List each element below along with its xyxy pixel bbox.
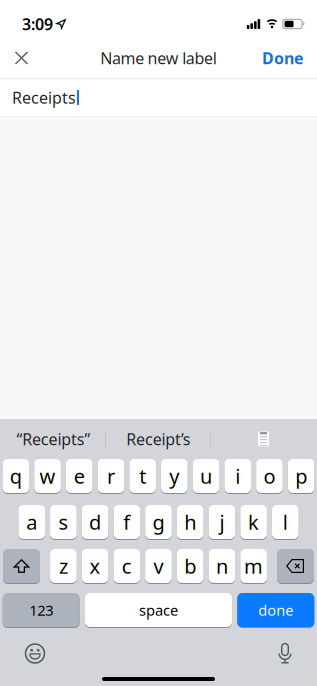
staticText: u xyxy=(200,463,212,489)
button[interactable] xyxy=(278,643,292,664)
button[interactable]: k xyxy=(240,505,267,539)
staticText: w xyxy=(40,463,56,489)
button[interactable]: q xyxy=(3,459,29,493)
button[interactable] xyxy=(25,643,45,663)
button[interactable]: m xyxy=(240,549,267,583)
button[interactable]: t xyxy=(129,459,156,493)
button[interactable]: u xyxy=(193,459,219,493)
staticText: x xyxy=(90,553,101,579)
staticText: i xyxy=(235,463,240,489)
staticText: b xyxy=(184,553,196,579)
button[interactable]: c xyxy=(113,549,140,583)
button[interactable]: b xyxy=(177,549,203,583)
button[interactable]: Receipt’s xyxy=(106,419,211,459)
staticText: 123 xyxy=(29,600,53,620)
staticText: o xyxy=(263,463,275,489)
staticText: h xyxy=(184,509,196,535)
button[interactable]: y xyxy=(161,459,188,493)
button[interactable]: a xyxy=(18,505,45,539)
button[interactable]: i xyxy=(224,459,251,493)
staticText: r xyxy=(107,463,115,489)
button[interactable]: r xyxy=(98,459,124,493)
staticText: z xyxy=(59,553,68,579)
button[interactable]: h xyxy=(177,505,203,539)
button[interactable]: done xyxy=(237,593,314,627)
staticText: l xyxy=(283,509,288,535)
staticText: s xyxy=(58,509,68,535)
staticText: j xyxy=(219,509,224,535)
button[interactable]: d xyxy=(82,505,108,539)
button[interactable] xyxy=(0,39,28,76)
button[interactable]: n xyxy=(209,549,235,583)
staticText: v xyxy=(153,553,163,579)
staticText: c xyxy=(122,553,132,579)
staticText: q xyxy=(10,463,22,489)
staticText: e xyxy=(74,463,85,489)
staticText: f xyxy=(123,509,130,535)
staticText: g xyxy=(152,509,164,535)
button[interactable]: g xyxy=(145,505,172,539)
button[interactable]: w xyxy=(34,459,61,493)
staticText: done xyxy=(258,600,293,620)
button[interactable]: l xyxy=(272,505,299,539)
button[interactable]: Done xyxy=(262,35,317,81)
button[interactable]: f xyxy=(113,505,140,539)
staticText: Receipt’s xyxy=(126,428,191,450)
staticText: k xyxy=(248,509,259,535)
staticText: a xyxy=(26,509,37,535)
staticText: Name new label xyxy=(100,47,217,69)
staticText: y xyxy=(169,463,179,489)
button[interactable]: o xyxy=(256,459,283,493)
staticText: n xyxy=(216,553,228,579)
button[interactable]: “Receipts” xyxy=(1,419,106,459)
button[interactable]: 123 xyxy=(3,593,80,627)
button[interactable]: v xyxy=(145,549,172,583)
button[interactable]: x xyxy=(82,549,108,583)
button[interactable]: z xyxy=(50,549,77,583)
staticText: t xyxy=(139,463,146,489)
button[interactable]: s xyxy=(50,505,77,539)
button[interactable] xyxy=(3,549,40,583)
button[interactable]: p xyxy=(288,459,314,493)
staticText: “Receipts” xyxy=(16,428,91,450)
button[interactable] xyxy=(211,419,316,459)
button[interactable] xyxy=(277,549,314,583)
button[interactable]: j xyxy=(209,505,235,539)
staticText: m xyxy=(244,553,263,579)
staticText: space xyxy=(139,600,178,620)
staticText: 3:09 xyxy=(22,13,53,35)
staticText: Done xyxy=(262,47,304,69)
button[interactable]: space xyxy=(85,593,232,627)
staticText: p xyxy=(295,463,307,489)
staticText: d xyxy=(89,509,101,535)
staticText: Receipts xyxy=(12,87,76,108)
button[interactable]: e xyxy=(66,459,93,493)
